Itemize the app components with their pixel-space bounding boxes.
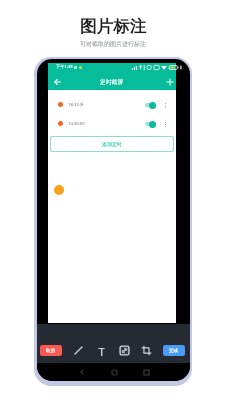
staticText: T [98,344,105,359]
button[interactable]: 添加定时 [50,136,174,152]
button[interactable]: Crop [141,345,152,356]
staticText: 下午1:33 [56,64,73,70]
staticText: 可对截取的图片进行标注 [80,40,146,48]
button[interactable]: More options [162,99,168,111]
button[interactable]: 完成 [163,345,185,356]
staticText: 10:30:00 [68,121,85,127]
button[interactable]: 18:33:升 [58,95,168,114]
button[interactable]: Mosaic [119,345,130,356]
button[interactable]: 10:30:00 [58,114,168,133]
staticText: 完成 [169,348,179,354]
staticText: 定时截屏 [100,78,124,85]
button[interactable]: Back [75,365,89,379]
staticText: 添加定时 [102,141,122,147]
button[interactable]: Recents [139,365,153,379]
button[interactable]: 取消 [40,345,62,356]
button[interactable]: Add [164,76,175,87]
button[interactable]: Draw [73,345,84,356]
button[interactable]: More options [162,118,168,130]
button[interactable]: Annotation marker [54,185,64,195]
staticText: 图片标注 [80,16,146,37]
button[interactable]: Text [93,343,109,359]
staticText: 取消 [46,348,56,354]
button[interactable]: Home [107,365,121,379]
staticText: 18:33:升 [68,102,85,108]
button[interactable]: Back [51,76,62,87]
